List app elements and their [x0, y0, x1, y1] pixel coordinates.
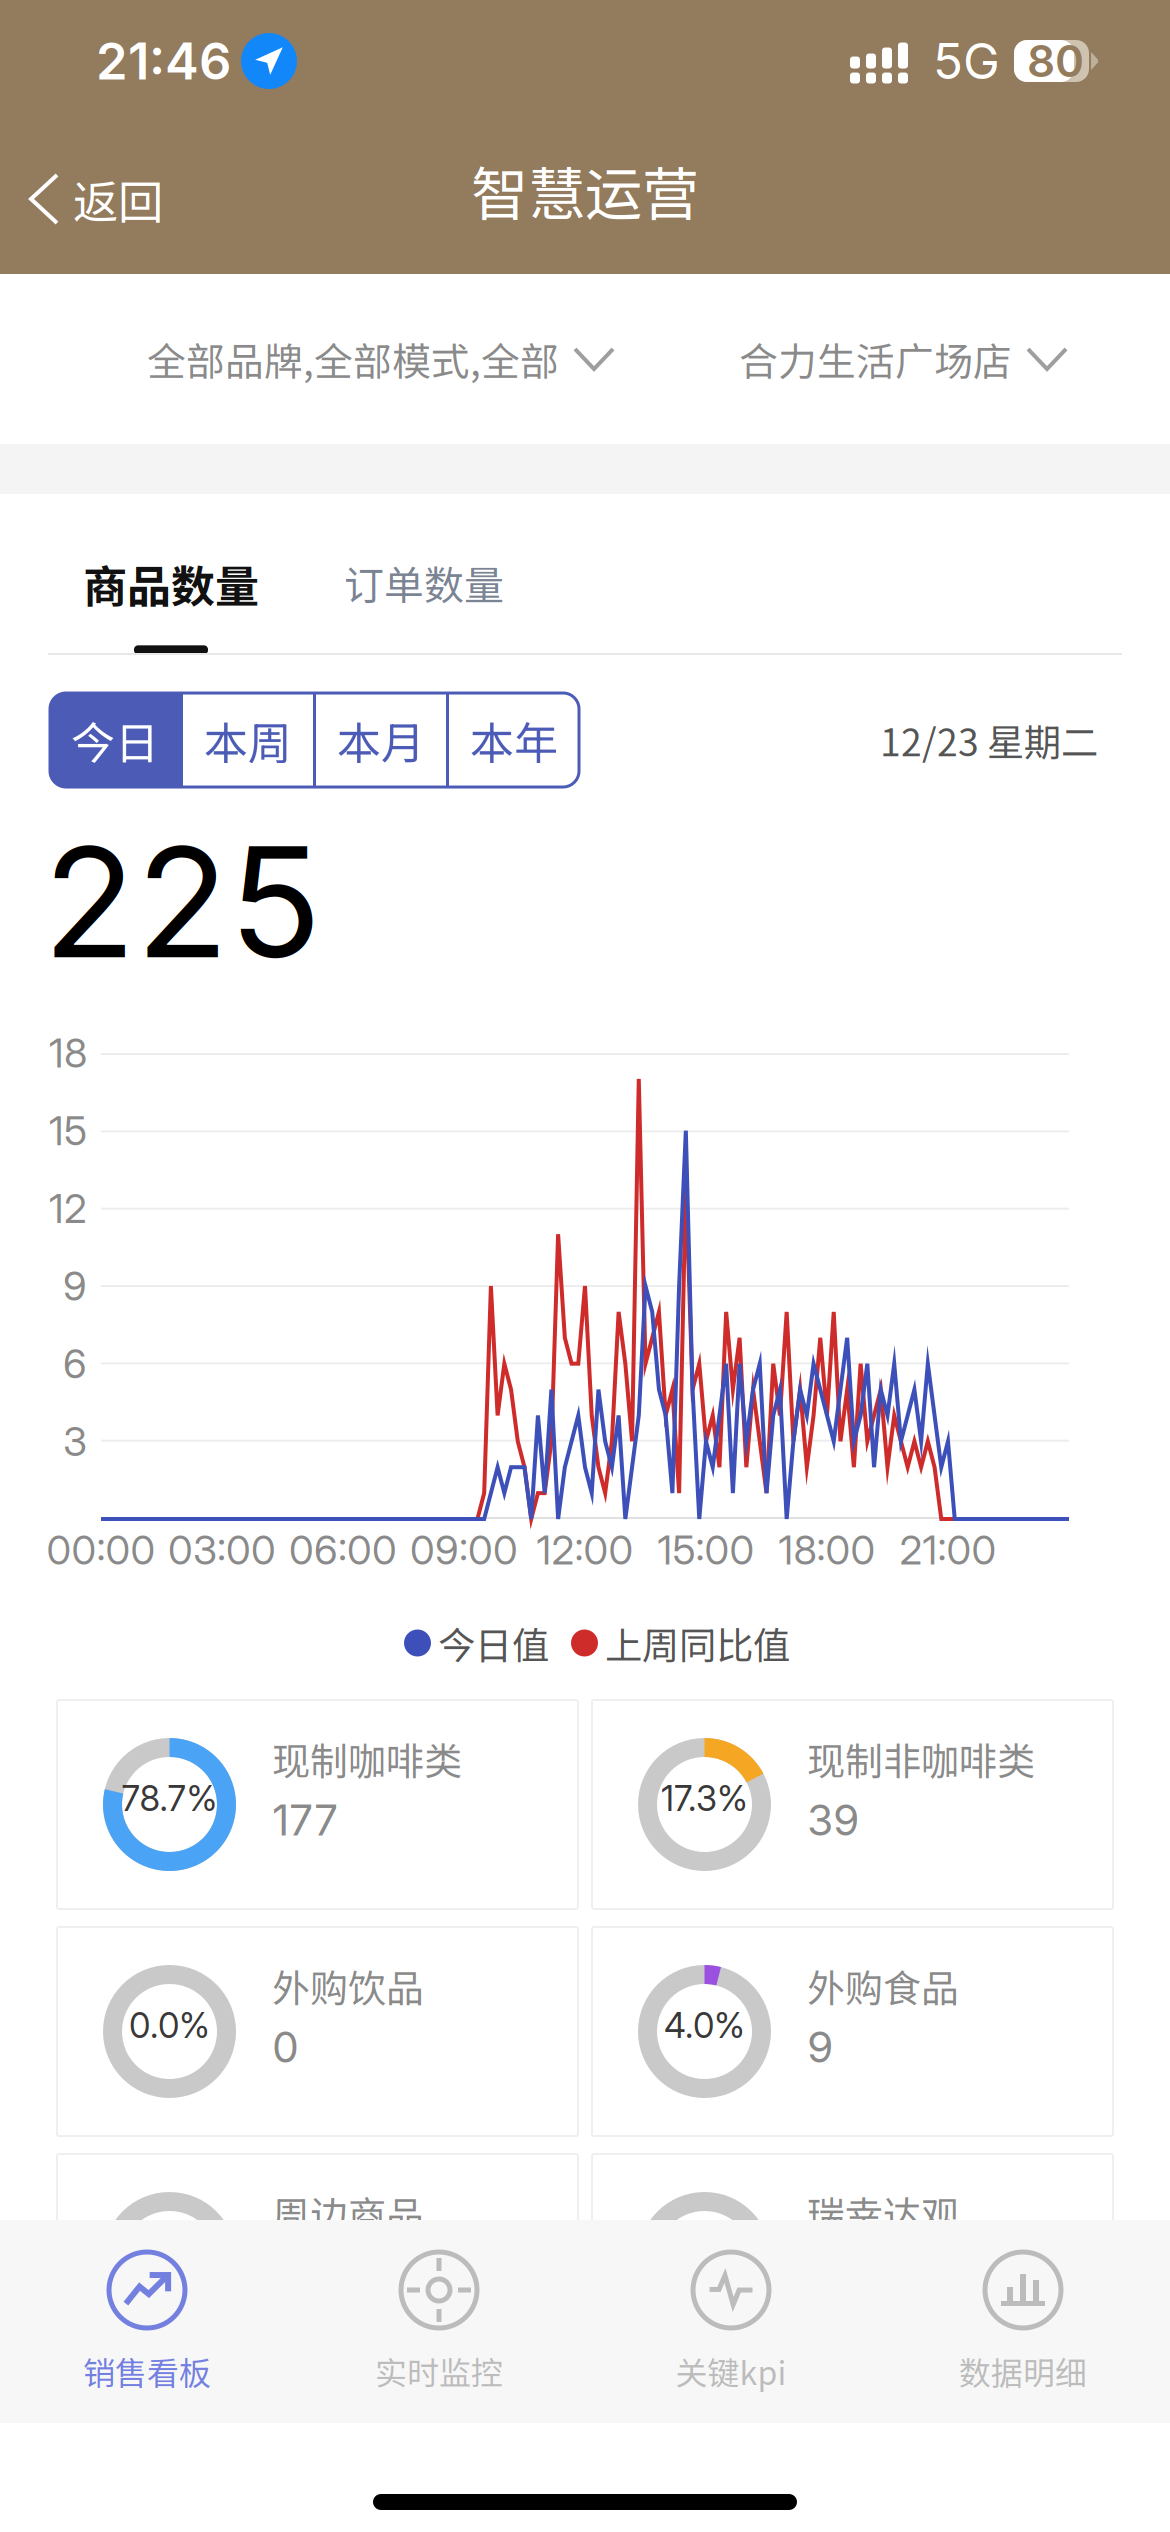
staticText: 5G — [933, 31, 1000, 91]
staticText: 0.0% — [664, 2231, 745, 2273]
staticText: 18 — [49, 1029, 87, 1077]
staticText: 订单数量 — [344, 554, 504, 611]
staticText: 18:00 — [778, 1526, 875, 1574]
button[interactable]: 商品数量 — [79, 544, 263, 654]
button[interactable]: 0.0% — [57, 1927, 578, 2136]
button[interactable]: 销售看板 — [1, 2220, 293, 2423]
staticText: 09:00 — [410, 1526, 518, 1574]
staticText: 商品数量 — [83, 552, 259, 615]
button[interactable]: 关键kpi — [585, 2220, 877, 2423]
staticText: 今日值 — [438, 1616, 549, 1670]
staticText: 智慧运营 — [471, 148, 699, 231]
staticText: 3 — [63, 1417, 87, 1465]
button[interactable]: 0.0% — [592, 2154, 1113, 2363]
staticText: 00:00 — [46, 1526, 155, 1574]
staticText: 12 — [49, 1184, 87, 1232]
staticText: 9 — [807, 2021, 833, 2073]
staticText: 80 — [1027, 34, 1084, 88]
staticText: 返回 — [73, 166, 163, 232]
button[interactable]: 本年 — [449, 693, 579, 787]
button[interactable]: 78.7% — [57, 1700, 578, 1909]
staticText: 0.0% — [129, 2004, 210, 2046]
staticText: 9 — [63, 1262, 87, 1310]
staticText: 本年 — [470, 708, 558, 772]
staticText: 21:00 — [899, 1526, 996, 1574]
button[interactable]: 合力生活广场店 — [739, 304, 1066, 414]
staticText: 12/23 星期二 — [880, 713, 1098, 767]
staticText: 06:00 — [289, 1526, 397, 1574]
button[interactable]: 4.0% — [592, 1927, 1113, 2136]
button[interactable]: 返回 — [0, 131, 185, 231]
staticText: 78.7% — [121, 1777, 217, 1819]
staticText: 39 — [807, 1794, 859, 1846]
staticText: 15 — [49, 1106, 87, 1155]
staticText: 15:00 — [657, 1526, 754, 1574]
staticText: 0.0% — [129, 2231, 210, 2273]
staticText: 外购食品 — [807, 1958, 959, 2013]
staticText: 现制非咖啡类 — [807, 1731, 1035, 1786]
staticText: 177 — [272, 1794, 338, 1846]
button[interactable]: 全部品牌,全部模式,全部 — [147, 304, 613, 414]
staticText: 今日 — [71, 708, 159, 772]
staticText: 销售看板 — [83, 2348, 211, 2394]
staticText: 6 — [63, 1339, 87, 1388]
staticText: 周边商品 — [272, 2185, 424, 2240]
staticText: 03:00 — [168, 1526, 276, 1574]
button[interactable]: 数据明细 — [877, 2220, 1169, 2423]
staticText: 本月 — [337, 708, 425, 772]
staticText: 全部品牌,全部模式,全部 — [147, 331, 559, 387]
staticText: 4.0% — [664, 2004, 745, 2046]
staticText: 数据明细 — [959, 2348, 1087, 2394]
staticText: 合力生活广场店 — [739, 331, 1012, 387]
staticText: 现制咖啡类 — [272, 1731, 462, 1786]
staticText: 瑞幸达观 — [807, 2185, 959, 2240]
button[interactable]: 本周 — [183, 693, 313, 787]
staticText: 0 — [272, 2021, 299, 2073]
button[interactable]: 17.3% — [592, 1700, 1113, 1909]
button[interactable]: 本月 — [316, 693, 446, 787]
staticText: 本周 — [204, 708, 292, 772]
staticText: 关键kpi — [675, 2348, 786, 2394]
staticText: 上周同比值 — [605, 1616, 790, 1670]
staticText: 12:00 — [536, 1526, 633, 1574]
button[interactable]: 订单数量 — [340, 544, 508, 650]
staticText: 外购饮品 — [272, 1958, 424, 2013]
button[interactable]: 0.0% — [57, 2154, 578, 2363]
staticText: 225 — [43, 810, 321, 994]
staticText: 实时监控 — [375, 2348, 503, 2394]
button[interactable]: 实时监控 — [293, 2220, 585, 2423]
staticText: 17.3% — [661, 1777, 748, 1819]
staticText: 21:46 — [96, 30, 231, 92]
button[interactable]: 今日 — [50, 693, 180, 787]
